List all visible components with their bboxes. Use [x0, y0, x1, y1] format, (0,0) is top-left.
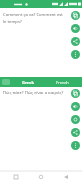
- button[interactable]: Recents: [10, 171, 22, 183]
- staticText: Πώς πάτε? Πώς είναι ο καιρός?: [3, 90, 64, 96]
- staticText: Greek: [22, 80, 34, 85]
- button[interactable]: Copy: [71, 89, 80, 98]
- button[interactable]: Back: [60, 171, 72, 183]
- staticText: French: [56, 80, 69, 85]
- button[interactable]: Copy: [71, 11, 80, 20]
- button[interactable]: Speak: [71, 24, 80, 33]
- button[interactable]: More: [71, 50, 80, 59]
- button[interactable]: French: [45, 80, 80, 85]
- button[interactable]: Share: [71, 37, 80, 46]
- button[interactable]: Speak: [71, 102, 80, 111]
- button[interactable]: Menu: [2, 79, 10, 85]
- staticText: Comment ça va? Comment est le temps?: [3, 12, 64, 24]
- button[interactable]: Share: [71, 128, 80, 137]
- button[interactable]: Home: [35, 171, 47, 183]
- button[interactable]: More: [71, 141, 80, 150]
- button[interactable]: Greek: [10, 80, 45, 85]
- button[interactable]: Favorite: [71, 115, 80, 124]
